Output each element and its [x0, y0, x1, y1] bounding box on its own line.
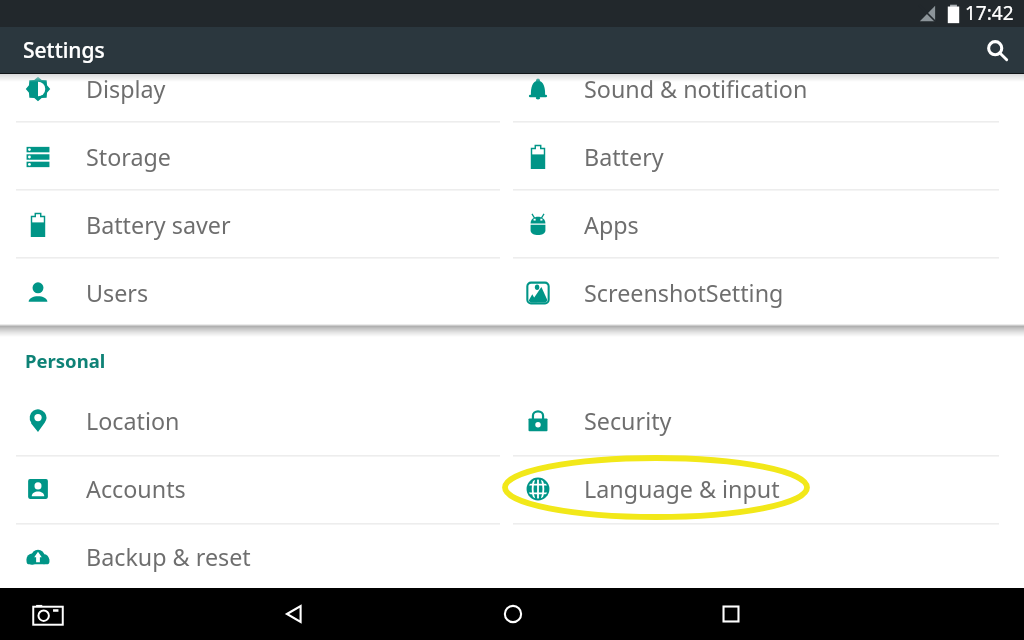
staticText: Storage: [86, 141, 171, 173]
staticText: Accounts: [86, 473, 186, 505]
staticText: Apps: [584, 209, 639, 241]
staticText: Users: [86, 277, 149, 309]
staticText: Battery: [584, 141, 664, 173]
button[interactable]: ScreenshotSetting: [500, 259, 1011, 327]
button[interactable]: Accounts: [0, 455, 500, 523]
button[interactable]: Backup & reset: [0, 523, 500, 591]
button[interactable]: Back: [272, 592, 316, 636]
button[interactable]: Display: [0, 55, 500, 123]
button[interactable]: Apps: [500, 191, 1011, 259]
button[interactable]: Battery: [500, 123, 1011, 191]
staticText: Display: [86, 73, 166, 105]
button[interactable]: Users: [0, 259, 500, 327]
staticText: Language & input: [584, 473, 780, 505]
staticText: ScreenshotSetting: [584, 277, 784, 309]
button[interactable]: Sound & notification: [500, 55, 1011, 123]
staticText: Battery saver: [86, 209, 231, 241]
staticText: Personal: [25, 348, 106, 373]
button[interactable]: Battery saver: [0, 191, 500, 259]
button[interactable]: Recents: [709, 592, 753, 636]
staticText: Security: [584, 405, 672, 437]
button[interactable]: Screenshot: [26, 593, 70, 637]
button[interactable]: Home: [491, 592, 535, 636]
button[interactable]: Security: [500, 387, 1011, 455]
button[interactable]: Language & input: [500, 455, 1011, 523]
staticText: Backup & reset: [86, 541, 251, 573]
button[interactable]: Location: [0, 387, 500, 455]
staticText: Settings: [23, 36, 105, 65]
staticText: Sound & notification: [584, 73, 808, 105]
staticText: 17:42: [965, 0, 1014, 26]
button[interactable]: Search: [975, 28, 1019, 72]
button[interactable]: Storage: [0, 123, 500, 191]
staticText: Location: [86, 405, 180, 437]
